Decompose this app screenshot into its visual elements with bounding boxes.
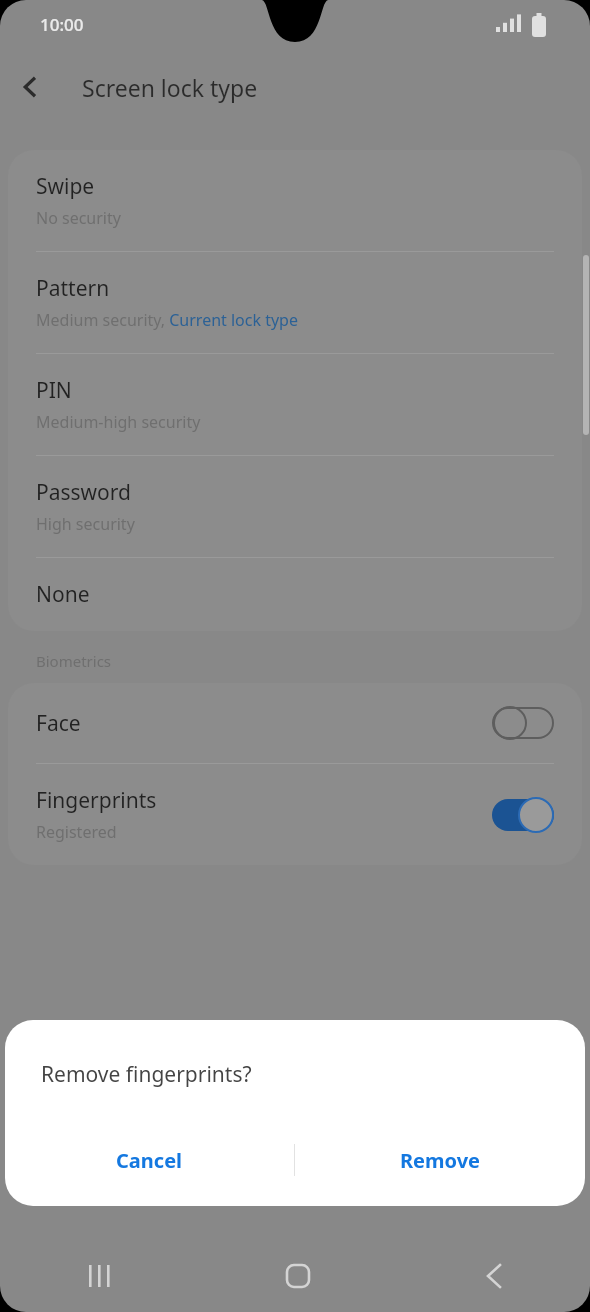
staticText: Password bbox=[36, 478, 131, 507]
staticText: PIN bbox=[36, 376, 72, 405]
button[interactable]: Recents bbox=[0, 1232, 196, 1312]
staticText: No security bbox=[36, 207, 121, 229]
staticText: Face bbox=[36, 709, 81, 738]
staticText: Pattern bbox=[36, 274, 110, 303]
button[interactable]: PIN bbox=[8, 354, 582, 455]
staticText: 10:00 bbox=[40, 13, 84, 36]
staticText: Medium-high security bbox=[36, 411, 201, 433]
staticText: Swipe bbox=[36, 172, 95, 201]
staticText: Registered bbox=[36, 821, 117, 843]
button[interactable]: Back bbox=[393, 1232, 590, 1312]
staticText: None bbox=[36, 580, 90, 609]
button[interactable]: Remove bbox=[295, 1130, 585, 1190]
button[interactable]: Cancel bbox=[5, 1130, 294, 1190]
staticText: Cancel bbox=[116, 1147, 183, 1174]
staticText: Biometrics bbox=[36, 651, 112, 671]
staticText: Medium security, Current lock type bbox=[36, 309, 298, 331]
button[interactable]: None bbox=[8, 558, 582, 631]
button[interactable]: Face bbox=[8, 683, 582, 763]
staticText: High security bbox=[36, 513, 135, 535]
button[interactable]: Password bbox=[8, 456, 582, 557]
staticText: Screen lock type bbox=[82, 72, 258, 103]
staticText: Remove bbox=[400, 1147, 481, 1174]
button[interactable]: Pattern bbox=[8, 252, 582, 353]
button[interactable]: Fingerprints bbox=[8, 764, 582, 865]
staticText: Fingerprints bbox=[36, 786, 157, 815]
button[interactable]: Home bbox=[196, 1232, 393, 1312]
button[interactable]: Back bbox=[0, 57, 60, 117]
button[interactable]: Swipe bbox=[8, 150, 582, 251]
staticText: Remove fingerprints? bbox=[41, 1060, 252, 1089]
